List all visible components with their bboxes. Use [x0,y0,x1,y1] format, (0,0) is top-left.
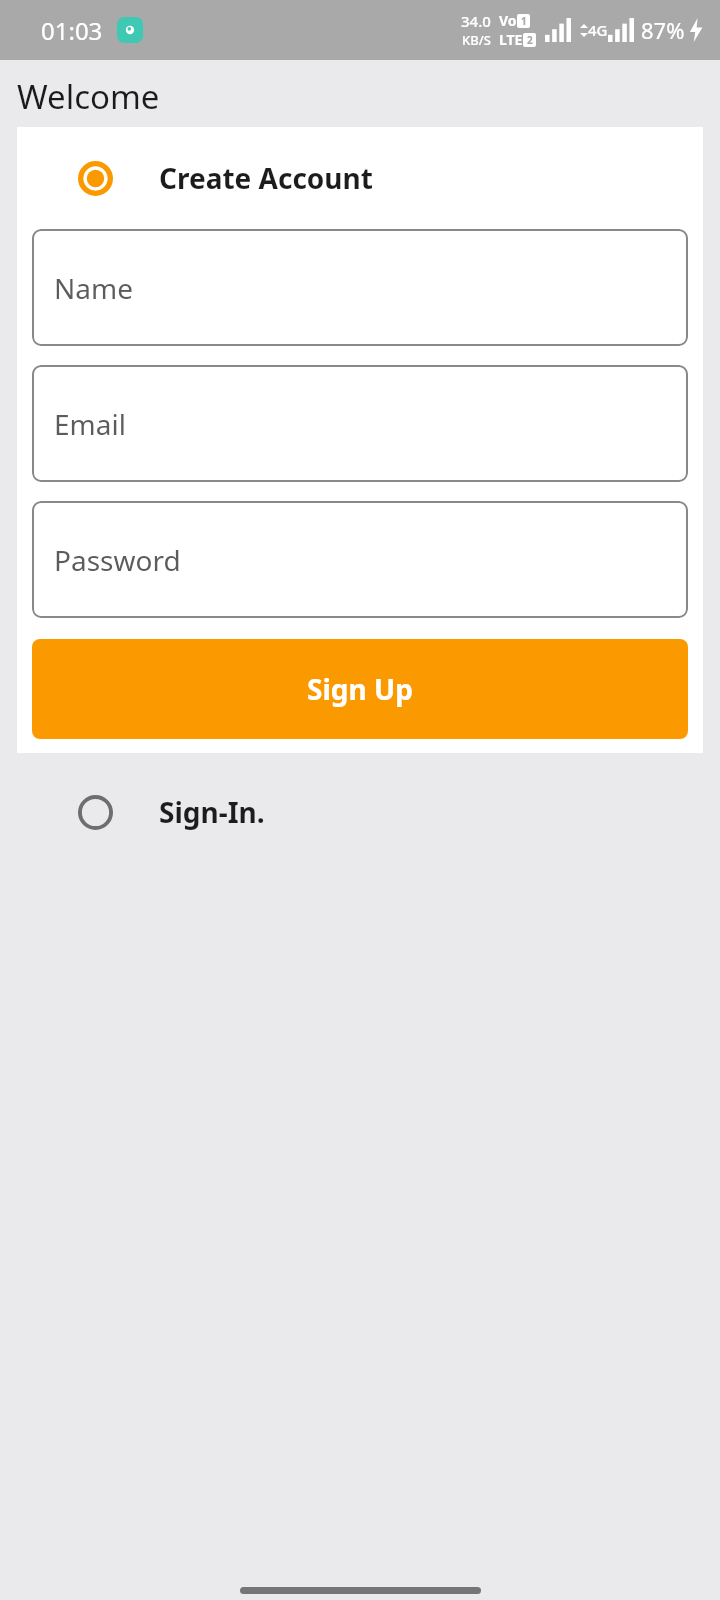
staticText: Sign Up [307,670,413,708]
staticText: Password [54,541,181,579]
button[interactable]: Sign in option [0,753,720,871]
other: Create Account selected [77,160,114,197]
staticText: Welcome [17,74,160,119]
staticText: Email [54,405,126,443]
staticText: 2 [527,33,533,47]
staticText: Name [54,269,133,307]
button[interactable]: Email [32,365,688,482]
staticText: 4G [588,20,608,40]
staticText: 87% [641,15,685,45]
button[interactable]: Create Account selected [17,127,703,229]
staticText: Create Account [159,159,373,197]
staticText: Sign-In. [159,793,265,831]
button[interactable]: Password [32,501,688,618]
button[interactable]: Name [32,229,688,346]
staticText: LTE [499,30,523,49]
staticText: Vo [499,11,517,30]
other: Sign in option [77,794,114,831]
staticText: 01:03 [41,14,103,47]
staticText: 34.0 [461,11,491,31]
staticText: KB/S [462,31,491,49]
button[interactable]: Sign Up [32,639,688,739]
staticText: 1 [521,14,527,28]
